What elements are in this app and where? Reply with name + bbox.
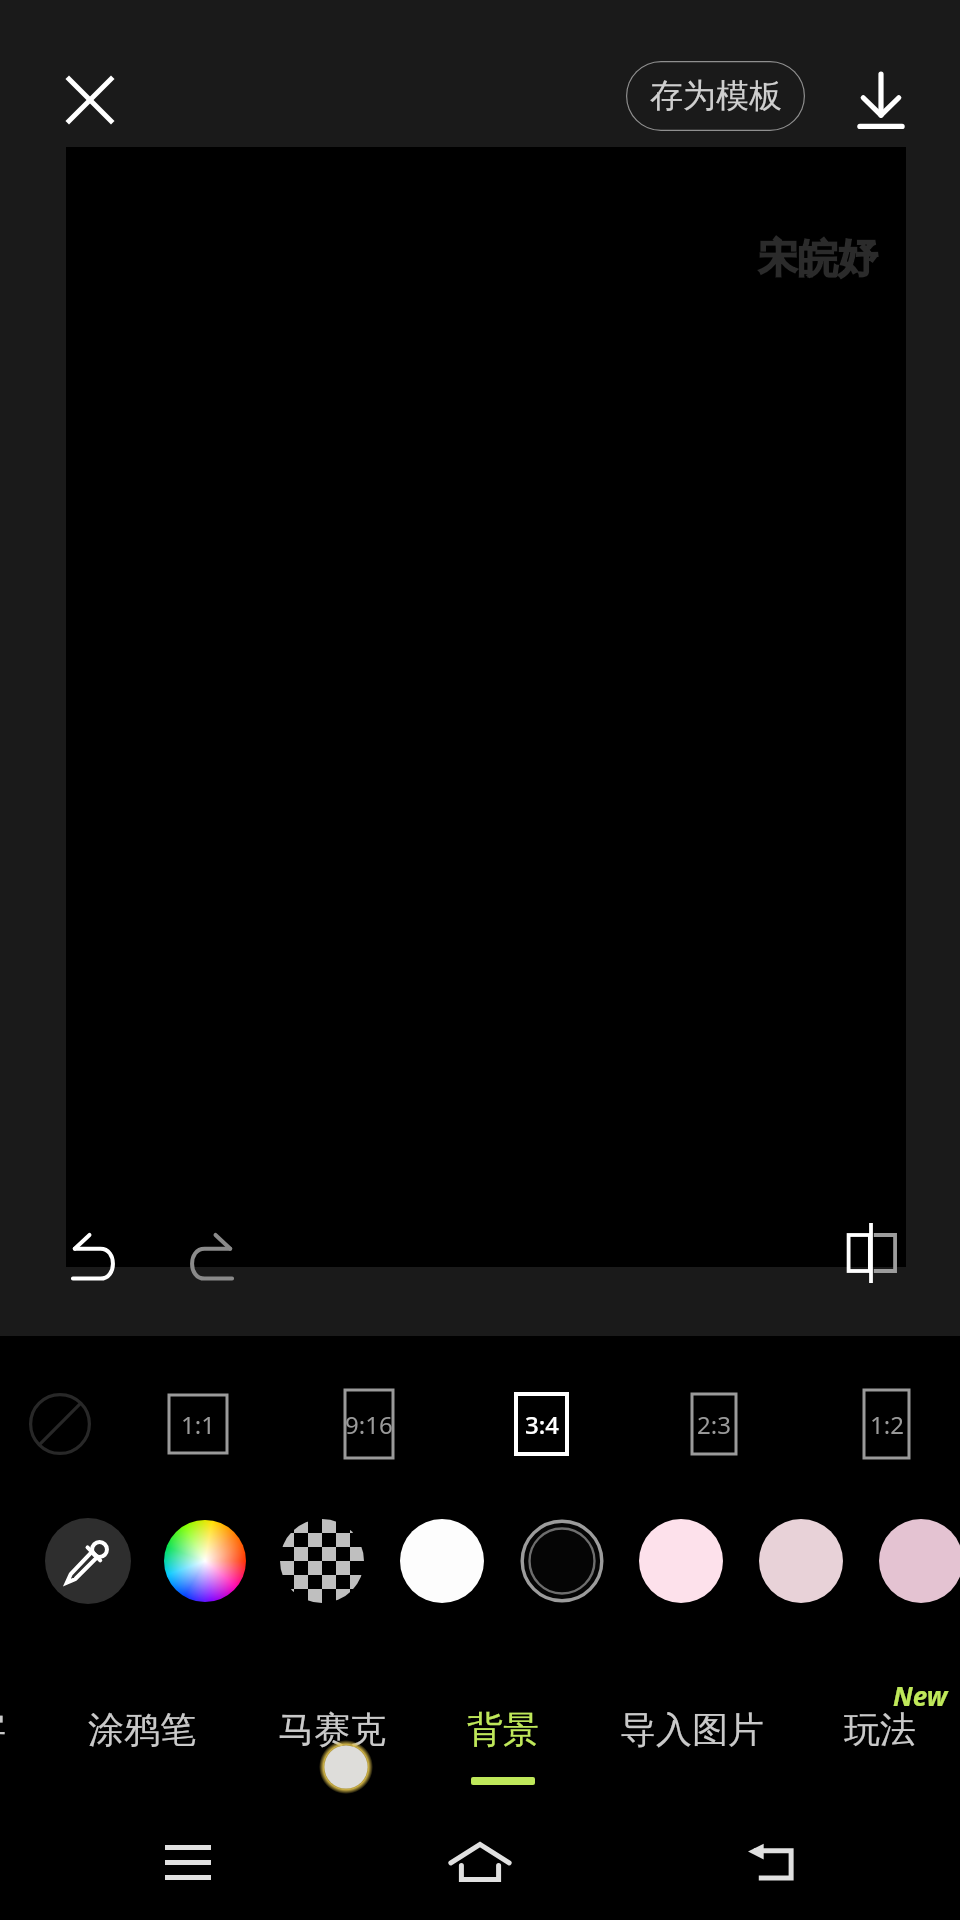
staticText: 涂鸦笔 <box>88 1707 196 1752</box>
button[interactable]: Home <box>420 1802 540 1920</box>
staticText: 导入图片 <box>620 1707 764 1752</box>
button[interactable]: Colour swatch <box>512 1511 612 1611</box>
button[interactable]: 玩法 <box>775 1707 960 1817</box>
button[interactable]: 3:4 <box>486 1369 596 1479</box>
button[interactable]: Colour swatch <box>155 1511 255 1611</box>
button[interactable]: Back <box>712 1802 832 1920</box>
staticText: 文字 <box>0 1707 6 1752</box>
button[interactable]: 1:1 <box>143 1369 253 1479</box>
button[interactable]: 导入图片 <box>587 1707 797 1817</box>
button[interactable]: 背景 <box>398 1707 608 1817</box>
button[interactable]: No crop <box>5 1369 115 1479</box>
button[interactable]: 1:2 <box>831 1369 941 1479</box>
button[interactable]: Recents <box>128 1802 248 1920</box>
button[interactable]: 2:3 <box>659 1369 769 1479</box>
button[interactable]: Download <box>815 35 947 167</box>
button[interactable]: 9:16 <box>314 1369 424 1479</box>
staticText: 9:16 <box>345 1408 393 1441</box>
staticText: 背景 <box>467 1707 539 1752</box>
button[interactable]: Close <box>24 34 156 166</box>
staticText: 1:1 <box>181 1408 215 1441</box>
button[interactable]: 存为模板 <box>626 61 805 131</box>
staticText: 2:3 <box>697 1408 731 1441</box>
button[interactable]: 马赛克 <box>227 1707 437 1817</box>
staticText: 3:4 <box>525 1408 559 1441</box>
staticText: 宋皖妤 <box>758 233 878 283</box>
staticText: 存为模板 <box>650 75 782 117</box>
button[interactable]: 文字 <box>0 1707 75 1817</box>
staticText: New <box>893 1678 948 1713</box>
button[interactable]: Colour swatch <box>392 1511 492 1611</box>
button[interactable]: Colour swatch <box>631 1511 731 1611</box>
button[interactable]: Undo <box>35 1197 155 1317</box>
button[interactable]: Mirror <box>811 1193 931 1313</box>
staticText: 1:2 <box>870 1408 904 1441</box>
staticText: 玩法 <box>844 1707 916 1752</box>
button[interactable]: Colour swatch <box>751 1511 851 1611</box>
button[interactable]: Colour swatch <box>272 1511 372 1611</box>
staticText: 马赛克 <box>278 1707 386 1752</box>
button[interactable]: Colour swatch <box>38 1511 138 1611</box>
button[interactable]: Colour swatch <box>871 1511 960 1611</box>
button[interactable]: 涂鸦笔 <box>37 1707 247 1817</box>
button[interactable]: Redo <box>150 1197 270 1317</box>
